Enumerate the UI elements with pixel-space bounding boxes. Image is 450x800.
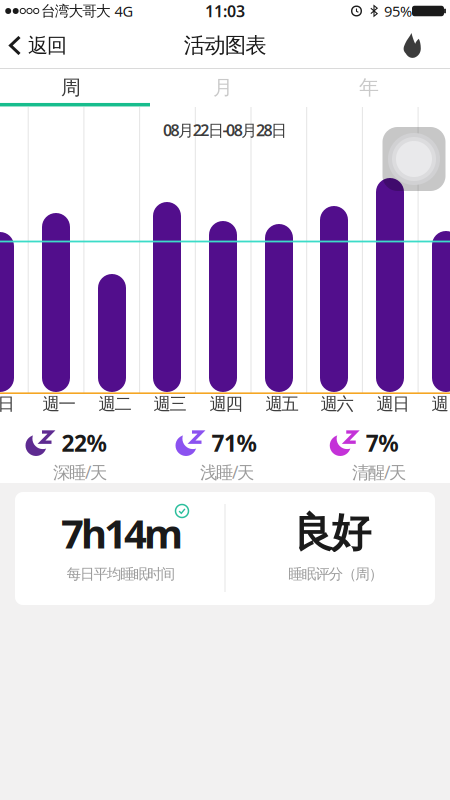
staticText: 月 bbox=[213, 75, 233, 100]
staticText: 71% bbox=[211, 428, 256, 458]
staticText: 週一 bbox=[42, 393, 75, 415]
staticText: 08月22日-08月28日 bbox=[163, 119, 287, 141]
staticText: 週日 bbox=[376, 393, 409, 415]
staticText: 週 bbox=[431, 393, 448, 415]
staticText: 週四 bbox=[209, 393, 242, 415]
button[interactable]: 月 bbox=[148, 70, 298, 104]
staticText: 週二 bbox=[98, 393, 131, 415]
staticText: 22% bbox=[61, 428, 106, 458]
staticText: 週五 bbox=[265, 393, 298, 415]
staticText: 週六 bbox=[320, 393, 353, 415]
staticText: 清醒/天 bbox=[352, 460, 406, 483]
button[interactable]: 年 bbox=[294, 70, 444, 104]
staticText: 7% bbox=[366, 428, 398, 458]
staticText: 睡眠评分（周） bbox=[288, 565, 384, 583]
staticText: 7h14m bbox=[61, 506, 183, 559]
staticText: 11:03 bbox=[205, 0, 245, 22]
staticText: 每日平均睡眠时间 bbox=[67, 565, 175, 583]
button[interactable]: 辅助触控 bbox=[382, 127, 445, 191]
staticText: 周 bbox=[61, 75, 81, 100]
staticText: 浅睡/天 bbox=[200, 460, 254, 483]
staticText: 年 bbox=[359, 75, 379, 100]
button[interactable]: 返回 bbox=[9, 23, 67, 67]
staticText: 週三 bbox=[153, 393, 186, 415]
staticText: 95% bbox=[384, 1, 412, 21]
button[interactable]: 热量 bbox=[391, 23, 431, 67]
staticText: 4G bbox=[114, 1, 133, 21]
staticText: 活动图表 bbox=[184, 32, 266, 59]
staticText: 深睡/天 bbox=[53, 460, 107, 483]
staticText: 良好 bbox=[293, 508, 371, 557]
staticText: 返回 bbox=[28, 33, 67, 58]
staticText: 日 bbox=[0, 393, 14, 415]
button[interactable]: 周 bbox=[0, 70, 146, 104]
staticText: 台湾大哥大 bbox=[41, 2, 111, 20]
